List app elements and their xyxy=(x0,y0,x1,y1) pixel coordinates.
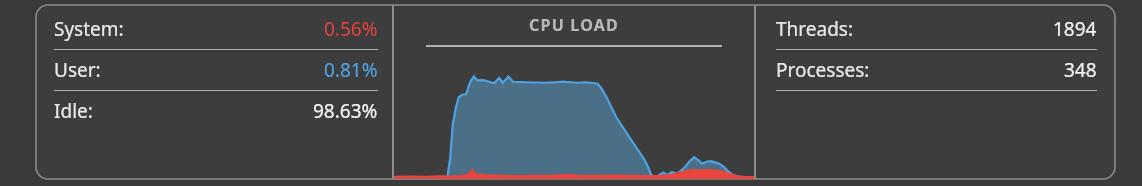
staticText: CPU LOAD xyxy=(529,14,619,36)
staticText: Processes: xyxy=(776,57,870,83)
button[interactable]: User: xyxy=(54,50,378,91)
staticText: Idle: xyxy=(54,98,93,124)
button[interactable]: System: xyxy=(54,9,378,50)
staticText: User: xyxy=(54,57,101,83)
staticText: 1894 xyxy=(1053,16,1097,42)
staticText: 0.56% xyxy=(324,16,378,42)
staticText: System: xyxy=(54,16,124,42)
button[interactable]: CPU load graph xyxy=(394,5,754,179)
button[interactable]: Idle: xyxy=(54,91,378,131)
button[interactable]: Threads: xyxy=(776,9,1097,50)
staticText: Threads: xyxy=(776,16,854,42)
staticText: 0.81% xyxy=(324,57,378,83)
staticText: 98.63% xyxy=(313,98,378,124)
button[interactable]: Processes: xyxy=(776,50,1097,91)
staticText: 348 xyxy=(1064,57,1097,83)
